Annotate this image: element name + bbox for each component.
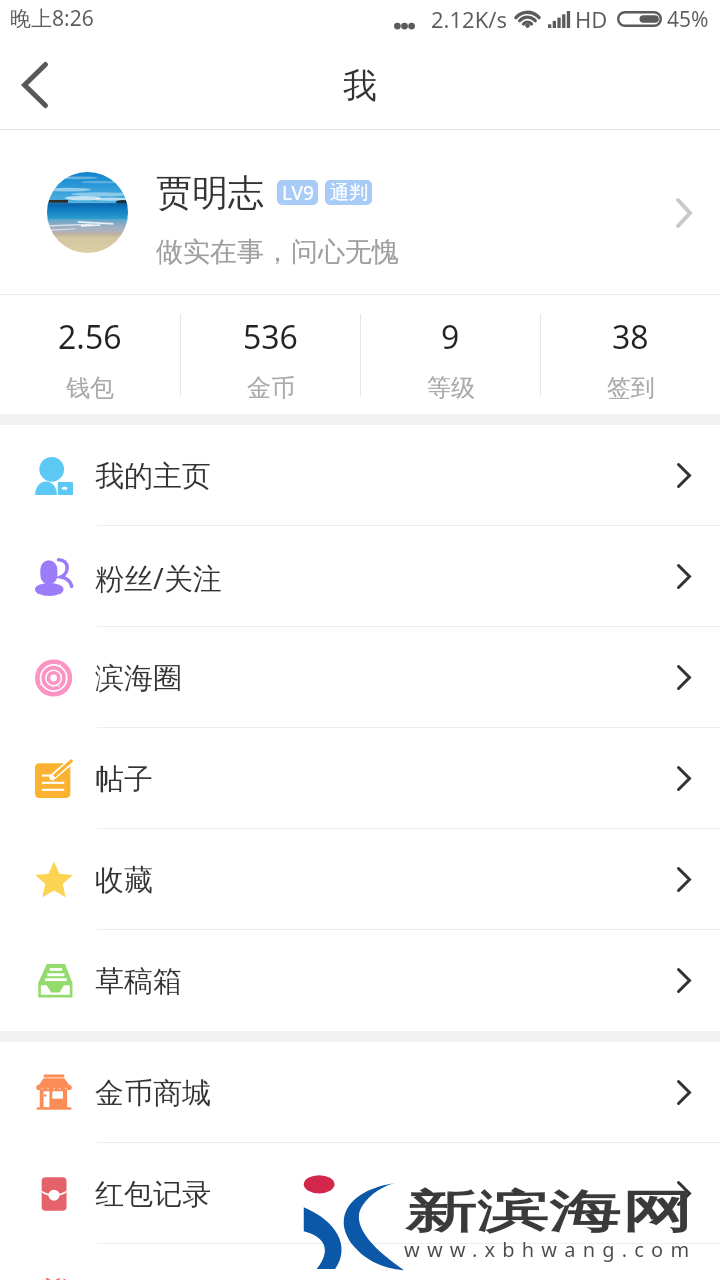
staticText: 贾明志	[156, 170, 264, 215]
staticText: 滨海圈	[95, 660, 182, 697]
button[interactable]: 金币商城	[0, 1042, 720, 1143]
staticText: 45%	[667, 5, 709, 34]
staticText: 帖子	[95, 761, 153, 798]
staticText: 2.56	[58, 315, 122, 359]
staticText: 通判	[330, 181, 368, 205]
button[interactable]: 收藏	[0, 829, 720, 930]
staticText: 钱包	[66, 373, 114, 403]
button[interactable]: 草稿箱	[0, 930, 720, 1031]
staticText: 金币	[247, 373, 295, 403]
staticText: 新滨海网	[405, 1184, 693, 1240]
button[interactable]: 帖子	[0, 728, 720, 829]
button[interactable]: 38	[541, 295, 720, 414]
staticText: HD	[575, 4, 608, 34]
button[interactable]: 2.56	[0, 295, 180, 414]
button[interactable]: 536	[181, 295, 360, 414]
staticText: 草稿箱	[95, 963, 182, 1000]
staticText: 签到	[607, 373, 655, 403]
staticText: 做实在事，问心无愧	[156, 235, 399, 269]
staticText: 等级	[427, 373, 475, 403]
button[interactable]	[0, 1244, 720, 1280]
staticText: 9	[441, 315, 460, 359]
staticText: 38	[612, 315, 649, 359]
staticText: 金币商城	[95, 1075, 211, 1112]
button[interactable]: Back	[0, 40, 70, 130]
staticText: www.xbhwang.com	[404, 1236, 697, 1263]
button[interactable]: 滨海圈	[0, 627, 720, 728]
staticText: 收藏	[95, 862, 153, 899]
staticText: 我的主页	[95, 458, 211, 495]
button[interactable]: 9	[361, 295, 540, 414]
staticText: LV9	[282, 180, 314, 205]
staticText: 红包记录	[95, 1176, 211, 1213]
button[interactable]: 贾明志	[0, 130, 720, 295]
button[interactable]: 粉丝/关注	[0, 526, 720, 627]
staticText: 粉丝/关注	[95, 558, 222, 598]
button[interactable]: 我的主页	[0, 425, 720, 526]
button[interactable]: 红包记录	[0, 1143, 720, 1244]
staticText: 536	[243, 315, 298, 359]
staticText: 晚上8:26	[10, 4, 94, 33]
staticText: 我	[343, 64, 377, 107]
staticText: 2.12K/s	[431, 4, 507, 34]
